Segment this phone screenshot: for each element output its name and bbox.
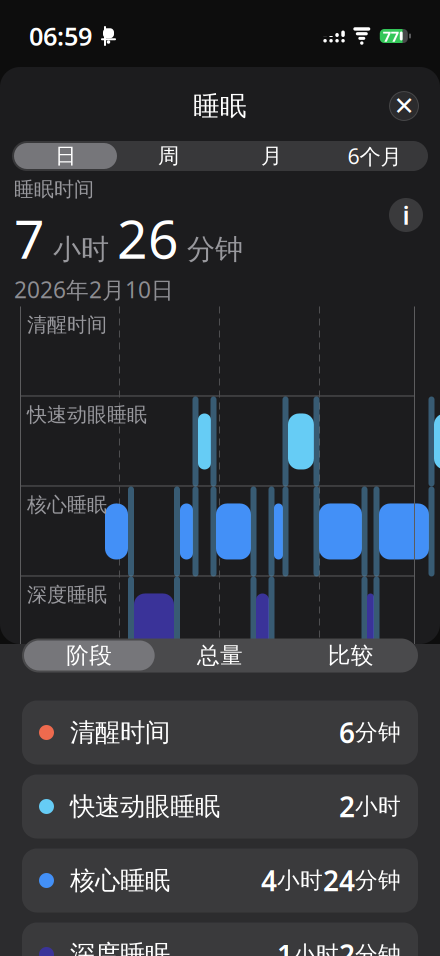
- staticText: 2: [339, 936, 355, 956]
- staticText: 快速动眼睡眠: [54, 791, 220, 822]
- staticText: 分钟: [179, 232, 243, 267]
- staticText: 7: [14, 203, 45, 273]
- button[interactable]: 快速动眼睡眠: [22, 774, 418, 838]
- staticText: 深度睡眠: [54, 939, 170, 956]
- button[interactable]: 阶段: [24, 640, 155, 670]
- button[interactable]: 深度睡眠: [22, 922, 418, 956]
- staticText: 1: [277, 936, 293, 956]
- staticText: 周: [158, 143, 179, 169]
- staticText: 小时: [293, 941, 339, 956]
- staticText: 小时: [355, 793, 401, 820]
- staticText: 77: [383, 26, 399, 46]
- staticText: 阶段: [66, 642, 112, 669]
- staticText: ✕: [393, 92, 414, 120]
- button[interactable]: 6个月: [323, 143, 426, 169]
- staticText: 快速动眼睡眠: [27, 402, 147, 427]
- staticText: 清醒时间: [54, 717, 170, 748]
- staticText: 清醒时间: [27, 312, 107, 337]
- button[interactable]: 月: [220, 143, 323, 169]
- button[interactable]: 日: [14, 143, 117, 169]
- staticText: 小时: [45, 232, 117, 267]
- button[interactable]: 核心睡眠: [22, 848, 418, 912]
- staticText: 睡眠: [193, 90, 247, 122]
- button[interactable]: 清醒时间: [22, 700, 418, 764]
- staticText: 2: [339, 788, 355, 825]
- staticText: 日: [55, 143, 76, 169]
- staticText: 核心睡眠: [27, 492, 107, 517]
- staticText: 核心睡眠: [54, 865, 170, 896]
- button[interactable]: 关闭: [382, 84, 426, 128]
- staticText: 睡眠时间: [14, 177, 94, 202]
- staticText: 分钟: [355, 941, 401, 956]
- staticText: 24: [323, 862, 355, 899]
- button[interactable]: 总量: [155, 640, 285, 670]
- staticText: 03:00: [218, 657, 245, 706]
- staticText: 2026年2月10日: [14, 274, 174, 304]
- button[interactable]: 信息: [386, 193, 426, 237]
- button[interactable]: 周: [117, 143, 220, 169]
- staticText: 26: [117, 203, 179, 273]
- staticText: 深度睡眠: [27, 582, 107, 607]
- staticText: 06:59: [29, 19, 92, 53]
- staticText: i: [402, 198, 409, 232]
- staticText: 分钟: [355, 719, 401, 746]
- staticText: 6: [339, 714, 355, 751]
- staticText: 21:00: [20, 657, 47, 706]
- staticText: 比较: [328, 642, 374, 669]
- staticText: 6个月: [347, 142, 401, 170]
- staticText: 00:00: [119, 657, 146, 706]
- staticText: 月: [261, 143, 282, 169]
- staticText: 总量: [197, 642, 243, 669]
- staticText: 分钟: [355, 867, 401, 894]
- staticText: 小时: [277, 867, 323, 894]
- button[interactable]: 比较: [285, 640, 416, 670]
- staticText: 06:00: [317, 657, 344, 706]
- staticText: 4: [261, 862, 277, 899]
